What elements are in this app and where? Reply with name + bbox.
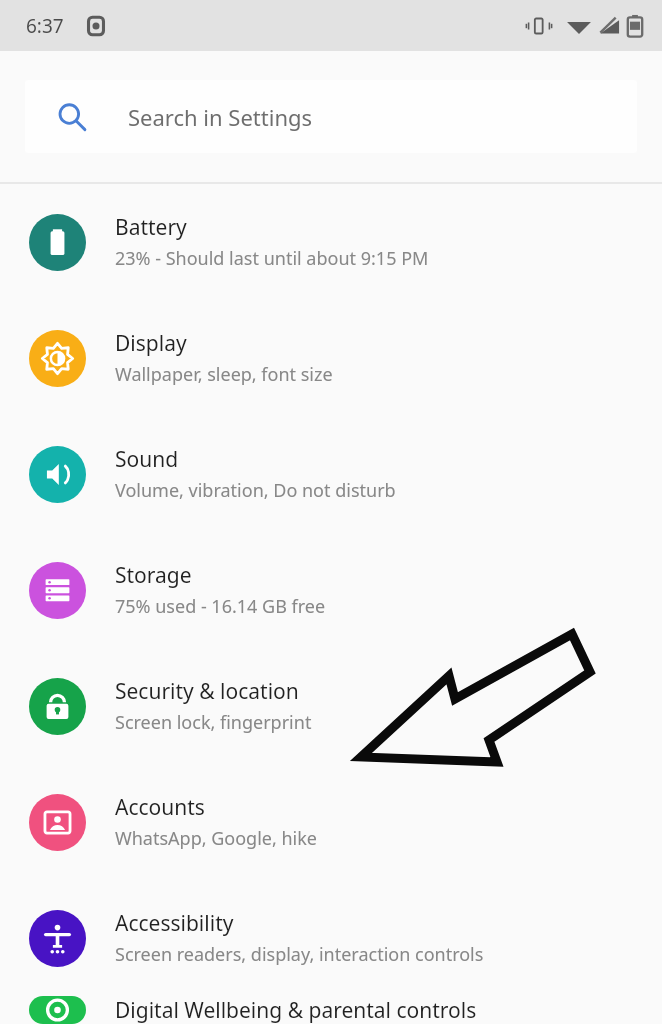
staticText: Storage (115, 561, 192, 590)
staticText: Volume, vibration, Do not disturb (115, 478, 396, 503)
staticText: 75% used - 16.14 GB free (115, 594, 326, 619)
button[interactable]: Sound (0, 416, 662, 532)
staticText: Display (115, 329, 187, 358)
staticText: 23% - Should last until about 9:15 PM (115, 246, 429, 271)
staticText: Wallpaper, sleep, font size (115, 362, 333, 387)
button[interactable]: Battery (0, 184, 662, 300)
button[interactable]: Storage (0, 532, 662, 648)
staticText: Sound (115, 445, 179, 474)
staticText: Battery (115, 213, 187, 242)
staticText: Security & location (115, 677, 299, 706)
staticText: Digital Wellbeing & parental controls (115, 996, 477, 1024)
staticText: Screen readers, display, interaction con… (115, 942, 484, 967)
button[interactable]: Accessibility (0, 880, 662, 996)
staticText: Search in Settings (128, 102, 313, 132)
button[interactable]: Search in Settings (25, 80, 637, 153)
button[interactable]: Digital Wellbeing & parental controls (0, 996, 662, 1024)
button[interactable]: Security & location (0, 648, 662, 764)
staticText: Accessibility (115, 909, 234, 938)
staticText: 6:37 (26, 13, 64, 39)
button[interactable]: Display (0, 300, 662, 416)
staticText: Accounts (115, 793, 205, 822)
button[interactable]: Accounts (0, 764, 662, 880)
staticText: Screen lock, fingerprint (115, 710, 312, 735)
staticText: WhatsApp, Google, hike (115, 826, 318, 851)
